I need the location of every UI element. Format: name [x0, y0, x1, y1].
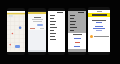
- button[interactable]: [68, 14, 86, 17]
- button[interactable]: [48, 35, 65, 38]
- button[interactable]: Continue: [37, 24, 43, 26]
- button[interactable]: [48, 29, 65, 32]
- button[interactable]: [48, 23, 65, 26]
- button[interactable]: [68, 8, 86, 55]
- button[interactable]: [68, 17, 86, 20]
- button[interactable]: [48, 14, 65, 17]
- button[interactable]: [68, 26, 86, 29]
- button[interactable]: [68, 32, 86, 35]
- button[interactable]: [68, 20, 86, 23]
- button[interactable]: Continue: [28, 8, 46, 55]
- button[interactable]: [48, 17, 65, 20]
- button[interactable]: [48, 20, 65, 23]
- button[interactable]: [48, 38, 65, 41]
- button[interactable]: [48, 26, 65, 29]
- button[interactable]: [48, 8, 65, 55]
- button[interactable]: [68, 23, 86, 26]
- button[interactable]: [68, 38, 86, 41]
- button[interactable]: [68, 29, 86, 32]
- button[interactable]: [48, 32, 65, 35]
- button[interactable]: Route: [15, 45, 20, 48]
- button[interactable]: Route: [7, 8, 25, 55]
- button[interactable]: [88, 7, 110, 55]
- button[interactable]: [88, 13, 110, 17]
